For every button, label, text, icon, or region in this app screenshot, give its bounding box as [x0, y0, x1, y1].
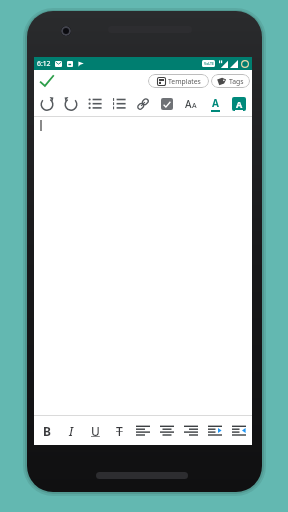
button[interactable]: A	[227, 92, 251, 116]
staticText: A	[185, 97, 192, 111]
button[interactable]	[107, 92, 131, 116]
button[interactable]	[227, 416, 251, 445]
button[interactable]	[155, 92, 179, 116]
button[interactable]	[155, 416, 179, 445]
button[interactable]	[203, 416, 227, 445]
button[interactable]: Tags	[211, 74, 250, 88]
button[interactable]	[36, 70, 58, 92]
staticText: I	[69, 423, 74, 439]
staticText: Tags	[229, 77, 244, 86]
staticText: Templates	[168, 77, 201, 86]
staticText: 6:12	[37, 59, 51, 68]
button[interactable]: A	[203, 92, 227, 116]
button[interactable]	[59, 92, 83, 116]
staticText: U	[91, 423, 100, 439]
button[interactable]: U	[83, 416, 107, 445]
staticText: A	[192, 101, 197, 111]
button[interactable]: Templates	[148, 74, 209, 88]
staticText: A	[212, 96, 219, 110]
button[interactable]: B	[35, 416, 59, 445]
button[interactable]: A	[179, 92, 203, 116]
button[interactable]	[131, 92, 155, 116]
button[interactable]	[35, 92, 59, 116]
button[interactable]	[131, 416, 155, 445]
button[interactable]: T	[107, 416, 131, 445]
staticText: B	[43, 423, 51, 439]
staticText: VoLTE	[204, 61, 214, 66]
button[interactable]	[83, 92, 107, 116]
button[interactable]	[179, 416, 203, 445]
staticText: A	[236, 98, 243, 110]
button[interactable]: I	[59, 416, 83, 445]
staticText: T	[116, 423, 123, 439]
